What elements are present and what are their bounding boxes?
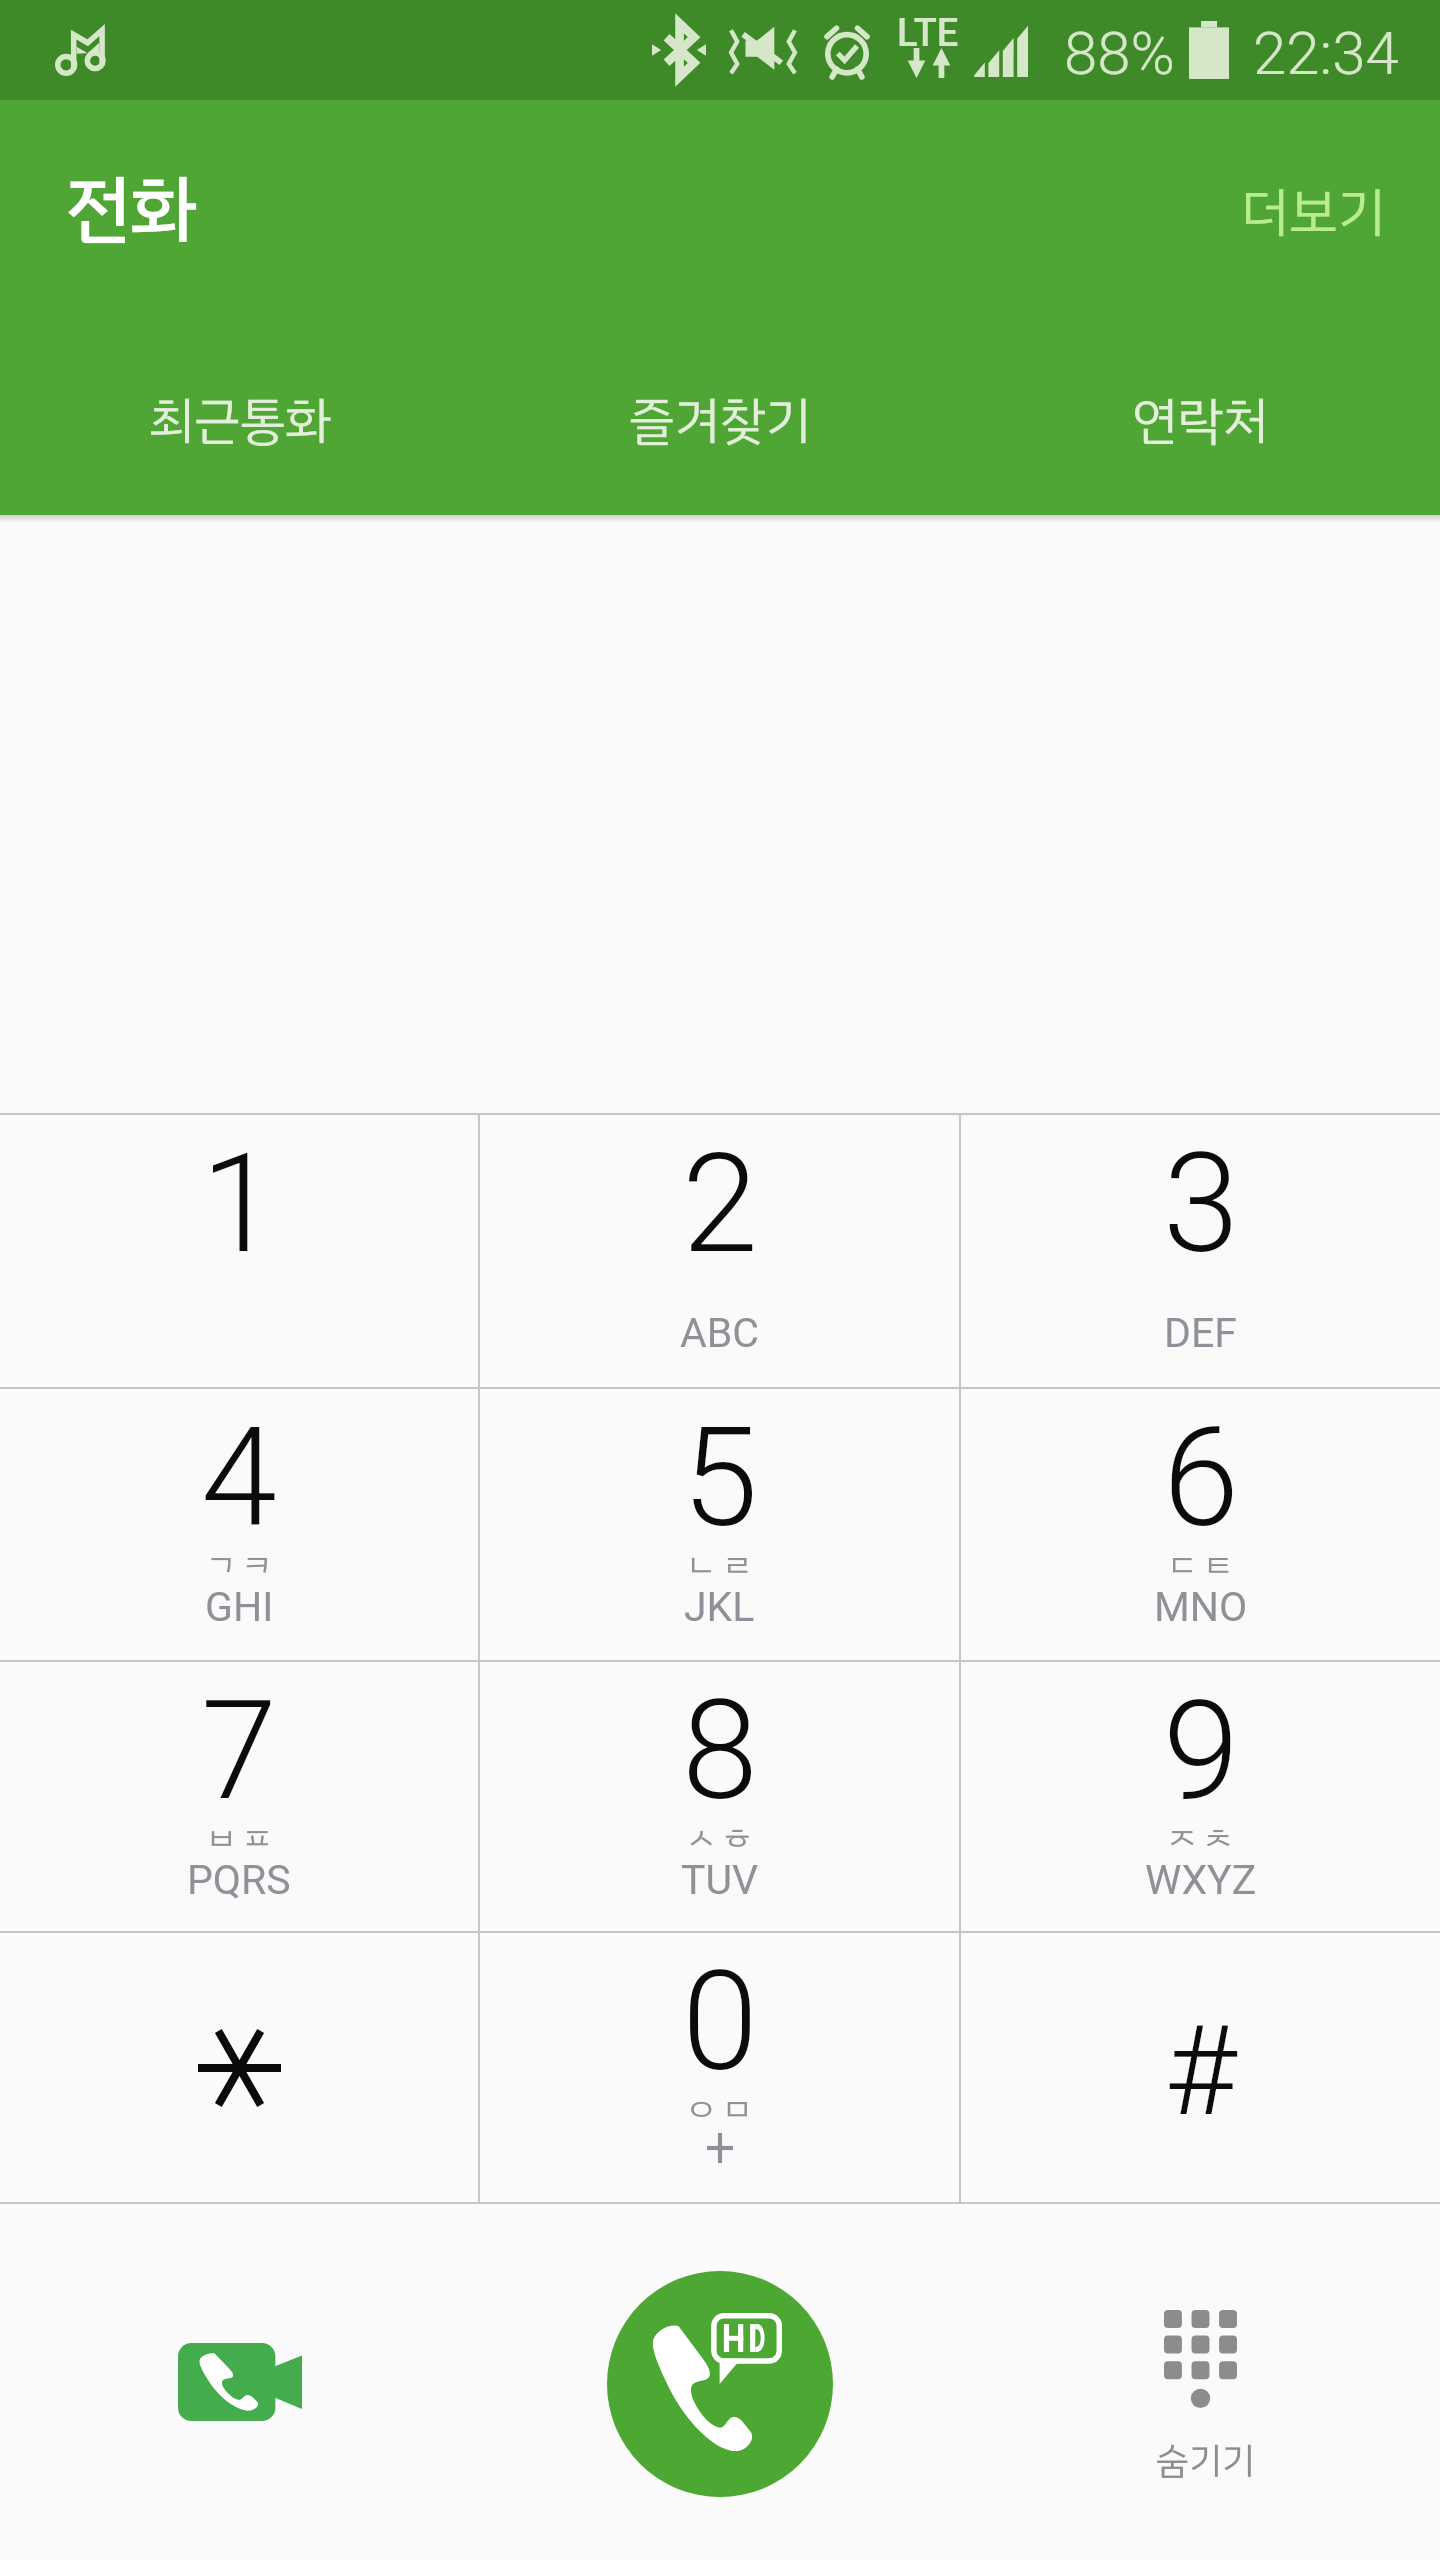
staticText: 1 [201, 1124, 277, 1285]
staticText: ㅈ ㅊ [1168, 1814, 1233, 1862]
staticText: 5 [682, 1398, 758, 1559]
staticText: TUV [681, 1856, 759, 1904]
staticText: 6 [1163, 1398, 1239, 1559]
button[interactable]: 5 [480, 1389, 959, 1660]
button[interactable]: 더보기 [1189, 158, 1440, 267]
staticText: ㄷ ㅌ [1168, 1541, 1233, 1589]
button[interactable]: 7 [0, 1662, 478, 1931]
button[interactable]: 즐겨찾기 [480, 365, 960, 515]
staticText: LTE [897, 11, 959, 56]
button[interactable]: # [961, 1933, 1440, 2202]
staticText: ㄴ ㄹ [687, 1541, 752, 1589]
button[interactable]: 6 [961, 1389, 1440, 1660]
button[interactable]: 2 [480, 1115, 959, 1387]
staticText: 더보기 [1241, 172, 1386, 253]
staticText: WXYZ [1145, 1856, 1257, 1904]
button[interactable] [0, 1933, 478, 2202]
staticText: 연락처 [1132, 383, 1269, 460]
button[interactable]: 연락처 [960, 365, 1440, 515]
staticText: ㅇ ㅁ [687, 2085, 752, 2133]
staticText: GHI [205, 1583, 274, 1631]
staticText: DEF [1164, 1309, 1237, 1357]
staticText: PQRS [187, 1856, 291, 1904]
staticText: 7 [201, 1671, 277, 1832]
button[interactable]: 4 [0, 1389, 478, 1660]
staticText: 최근통화 [149, 383, 331, 460]
button[interactable]: 1 [0, 1115, 478, 1387]
staticText: 8 [682, 1671, 758, 1832]
staticText: ㅂ ㅍ [207, 1814, 272, 1862]
button[interactable]: 8 [480, 1662, 959, 1931]
button[interactable]: 9 [961, 1662, 1440, 1931]
staticText: # [1164, 1999, 1237, 2144]
staticText: 0 [682, 1942, 758, 2103]
staticText: 숨기기 [1156, 2433, 1256, 2489]
staticText: 88% [1064, 18, 1175, 88]
staticText: 9 [1163, 1671, 1239, 1832]
button[interactable]: Call [607, 2271, 833, 2497]
button[interactable]: Hide keypad [1120, 2310, 1300, 2540]
staticText: 4 [201, 1398, 277, 1559]
staticText: 2 [682, 1124, 758, 1285]
staticText: 22:34 [1253, 18, 1399, 88]
button[interactable]: 최근통화 [0, 365, 480, 515]
button[interactable]: 3 [961, 1115, 1440, 1387]
staticText: ㄱ ㅋ [207, 1541, 272, 1589]
button[interactable]: Video call [160, 2302, 320, 2462]
staticText: ABC [680, 1309, 759, 1357]
staticText: JKL [684, 1583, 755, 1631]
staticText: ㅅ ㅎ [687, 1814, 752, 1862]
staticText: MNO [1154, 1583, 1248, 1631]
staticText: 3 [1163, 1124, 1239, 1285]
staticText: 즐겨찾기 [629, 383, 811, 460]
staticText: 전화 [65, 154, 198, 265]
button[interactable]: 0 [480, 1933, 959, 2202]
